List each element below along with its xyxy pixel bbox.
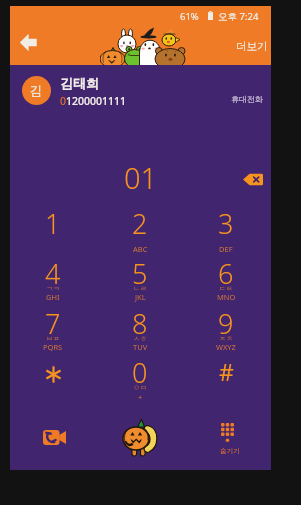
- staticText: TUV: [133, 342, 148, 352]
- button[interactable]: [184, 356, 268, 404]
- button[interactable]: Backspace: [235, 164, 269, 194]
- button[interactable]: 김: [10, 65, 271, 127]
- button[interactable]: [98, 356, 182, 404]
- staticText: 김태희: [60, 75, 99, 91]
- staticText: WXYZ: [216, 342, 236, 352]
- button[interactable]: [11, 307, 95, 355]
- button[interactable]: [11, 356, 95, 404]
- staticText: ㄷㅌ: [219, 284, 233, 293]
- staticText: 7: [45, 305, 61, 335]
- staticText: 5: [132, 255, 148, 285]
- button[interactable]: [98, 208, 182, 256]
- staticText: GHI: [46, 292, 60, 302]
- button[interactable]: Back: [10, 25, 47, 59]
- staticText: 3: [218, 205, 234, 235]
- button[interactable]: [184, 208, 268, 256]
- button[interactable]: [11, 258, 95, 306]
- button[interactable]: Call: [110, 410, 170, 466]
- button[interactable]: 숨기기: [196, 412, 258, 466]
- staticText: ㅇㅁ: [133, 383, 147, 392]
- staticText: #: [219, 356, 234, 386]
- button[interactable]: [11, 208, 95, 256]
- staticText: 6: [218, 255, 234, 285]
- staticText: ㅂㅍ: [46, 334, 60, 343]
- staticText: 01: [124, 158, 158, 192]
- staticText: JKL: [135, 292, 146, 302]
- staticText: PQRS: [43, 342, 63, 352]
- staticText: 4: [45, 255, 61, 285]
- staticText: 김: [30, 83, 43, 99]
- staticText: ㅈㅊ: [219, 334, 233, 343]
- staticText: 숨기기: [220, 447, 240, 455]
- staticText: 61%: [180, 10, 199, 23]
- staticText: 더보기: [236, 40, 268, 53]
- staticText: ㄱㅋ: [46, 284, 60, 293]
- staticText: 1: [45, 205, 61, 235]
- staticText: ㄴㄹ: [133, 284, 147, 293]
- staticText: 휴대전화: [231, 94, 263, 104]
- staticText: 0: [132, 354, 148, 384]
- staticText: MNO: [217, 292, 236, 302]
- staticText: 8: [132, 305, 148, 335]
- button[interactable]: [98, 258, 182, 306]
- staticText: ㅅㅎ: [133, 334, 147, 343]
- staticText: DEF: [219, 244, 233, 254]
- staticText: 2: [132, 205, 148, 235]
- staticText: 01200001111: [60, 94, 127, 108]
- staticText: 9: [218, 305, 234, 335]
- staticText: 오후 7:24: [218, 10, 259, 23]
- staticText: ABC: [133, 244, 148, 254]
- button[interactable]: Video call: [21, 406, 85, 464]
- button[interactable]: [98, 307, 182, 355]
- button[interactable]: [184, 258, 268, 306]
- button[interactable]: 더보기: [226, 31, 271, 61]
- button[interactable]: [184, 307, 268, 355]
- staticText: +: [138, 392, 143, 402]
